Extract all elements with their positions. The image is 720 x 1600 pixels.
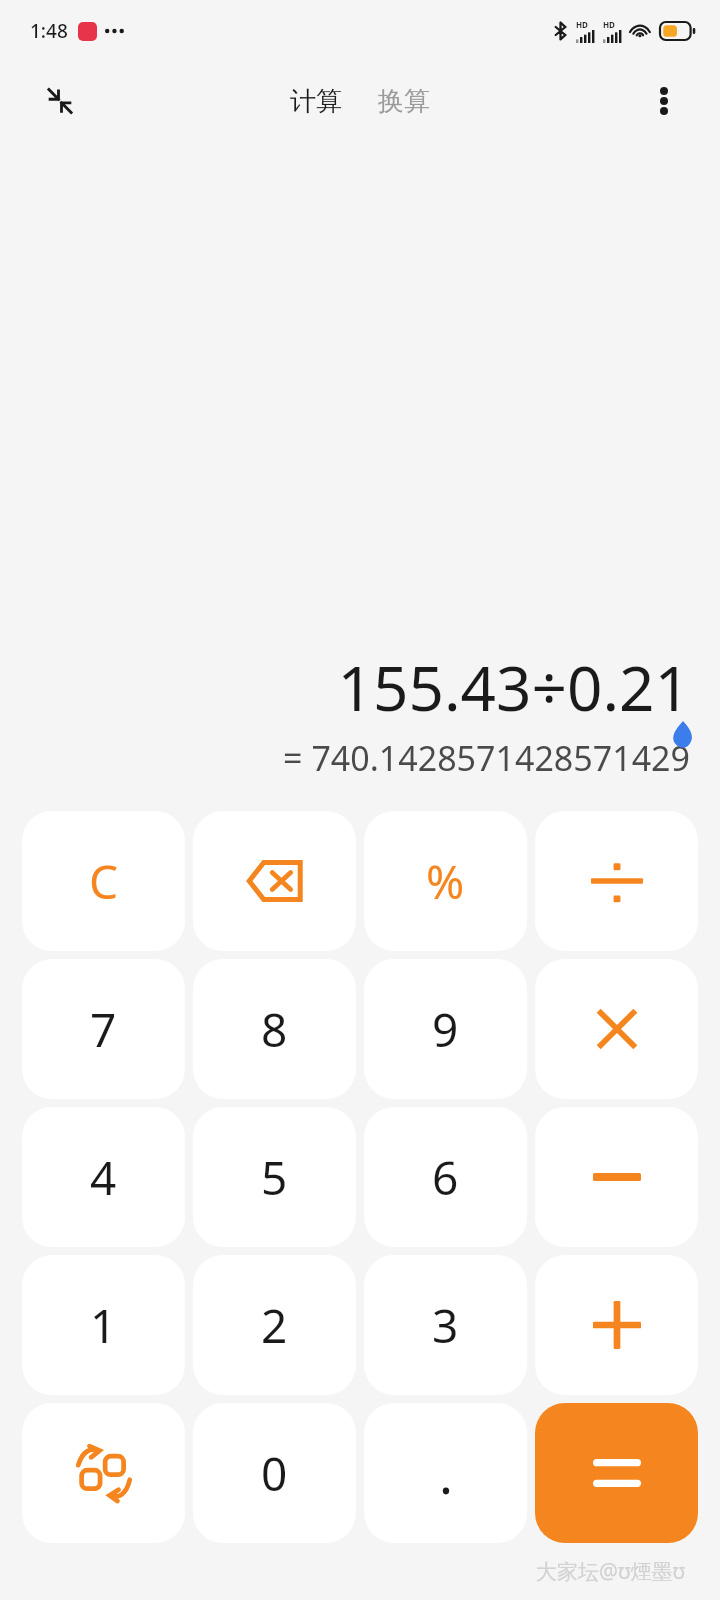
button[interactable]: 计算 xyxy=(284,79,348,124)
staticText: HD xyxy=(603,19,615,30)
button[interactable]: 9 xyxy=(364,959,527,1099)
button[interactable]: 4 xyxy=(22,1107,185,1247)
staticText: 9 xyxy=(432,998,459,1061)
staticText: = 740.1428571428571429 xyxy=(30,735,690,781)
button[interactable]: C xyxy=(22,811,185,951)
button[interactable]: 8 xyxy=(193,959,356,1099)
staticText: 7 xyxy=(90,998,117,1061)
button[interactable] xyxy=(535,811,698,951)
button[interactable]: Unit converter xyxy=(22,1403,185,1543)
staticText: % xyxy=(426,850,465,913)
button[interactable]: . xyxy=(364,1403,527,1543)
button[interactable]: 2 xyxy=(193,1255,356,1395)
button[interactable]: More options xyxy=(638,75,690,127)
staticText: 5 xyxy=(261,1146,288,1209)
staticText: . xyxy=(439,1438,453,1509)
button[interactable] xyxy=(535,1255,698,1395)
staticText: C xyxy=(89,850,119,913)
button[interactable]: Collapse xyxy=(34,75,86,127)
staticText: 大家坛@ʊ煙墨ʊ xyxy=(536,1557,686,1586)
staticText: 0 xyxy=(261,1442,288,1505)
button[interactable]: 0 xyxy=(193,1403,356,1543)
staticText: 换算 xyxy=(378,85,430,118)
button[interactable]: Backspace xyxy=(193,811,356,951)
button[interactable] xyxy=(535,959,698,1099)
staticText: 6 xyxy=(432,1146,459,1209)
staticText: 3 xyxy=(432,1294,459,1357)
button[interactable] xyxy=(535,1107,698,1247)
button[interactable] xyxy=(535,1403,698,1543)
staticText: 155.43÷0.21 xyxy=(30,645,690,729)
button[interactable]: 7 xyxy=(22,959,185,1099)
button[interactable]: % xyxy=(364,811,527,951)
staticText: 1 xyxy=(90,1294,117,1357)
staticText: 1:48 xyxy=(30,18,68,44)
button[interactable]: 1 xyxy=(22,1255,185,1395)
staticText: 2 xyxy=(261,1294,288,1357)
button[interactable]: 5 xyxy=(193,1107,356,1247)
button[interactable]: 换算 xyxy=(372,79,436,124)
staticText: 计算 xyxy=(290,85,342,118)
staticText: HD xyxy=(576,19,588,30)
staticText: 8 xyxy=(261,998,288,1061)
button[interactable]: 3 xyxy=(364,1255,527,1395)
button[interactable]: 6 xyxy=(364,1107,527,1247)
staticText: 4 xyxy=(90,1146,117,1209)
